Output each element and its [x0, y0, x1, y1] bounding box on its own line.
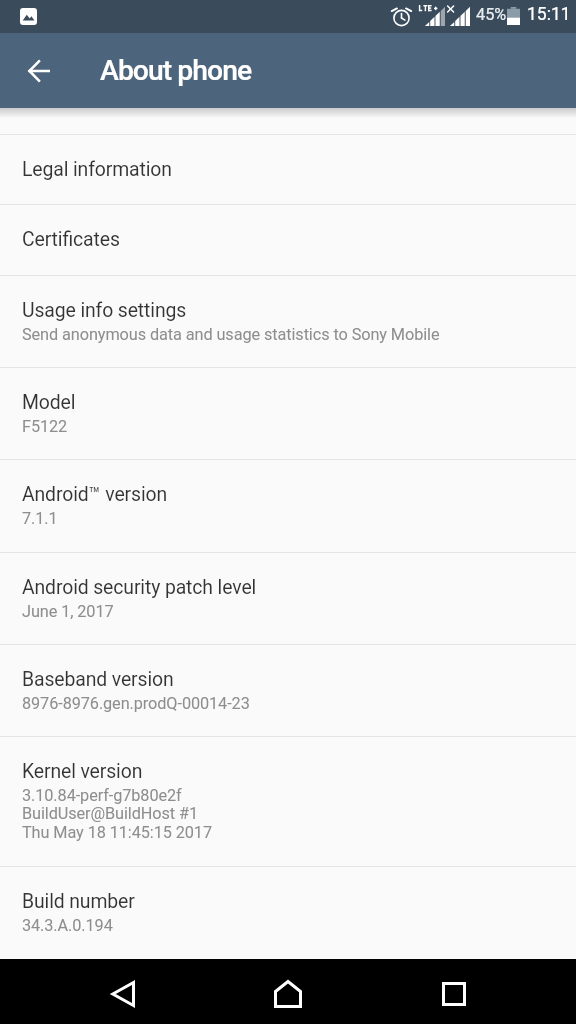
- button[interactable]: Navigate up: [16, 48, 61, 93]
- button[interactable]: Back: [82, 962, 164, 1024]
- staticText: 15:11: [527, 4, 571, 25]
- button[interactable]: Kernel version: [0, 736, 576, 866]
- staticText: F5122: [22, 417, 68, 436]
- staticText: 8976-8976.gen.prodQ-00014-23: [22, 694, 250, 713]
- button[interactable]: Recent apps: [413, 962, 495, 1024]
- staticText: BuildUser@BuildHost #1: [22, 804, 198, 823]
- staticText: Send anonymous data and usage statistics…: [22, 325, 440, 344]
- staticText: 3.10.84-perf-g7b80e2f: [22, 786, 182, 805]
- button[interactable]: Baseband version: [0, 644, 576, 736]
- button[interactable]: Legal information: [0, 134, 576, 204]
- staticText: Thu May 18 11:45:15 2017: [22, 823, 212, 842]
- staticText: Kernel version: [22, 760, 143, 783]
- button[interactable]: Certificates: [0, 204, 576, 275]
- staticText: 45%: [476, 5, 507, 24]
- button[interactable]: Build number: [0, 866, 576, 959]
- staticText: Android™ version: [22, 483, 168, 506]
- staticText: Android security patch level: [22, 576, 257, 599]
- button[interactable]: Android™ version: [0, 459, 576, 552]
- button[interactable]: [0, 108, 576, 134]
- button[interactable]: Home: [247, 962, 329, 1024]
- button[interactable]: Android security patch level: [0, 552, 576, 644]
- staticText: 7.1.1: [22, 509, 58, 528]
- staticText: Certificates: [22, 228, 120, 251]
- staticText: Usage info settings: [22, 299, 187, 322]
- other: Screenshot captured: [20, 8, 37, 25]
- staticText: June 1, 2017: [22, 602, 114, 621]
- staticText: 34.3.A.0.194: [22, 916, 113, 935]
- button[interactable]: Usage info settings: [0, 275, 576, 367]
- staticText: Legal information: [22, 158, 172, 181]
- button[interactable]: Model: [0, 367, 576, 459]
- staticText: Baseband version: [22, 668, 174, 691]
- staticText: Build number: [22, 890, 135, 913]
- staticText: Model: [22, 391, 76, 414]
- staticText: About phone: [100, 54, 252, 87]
